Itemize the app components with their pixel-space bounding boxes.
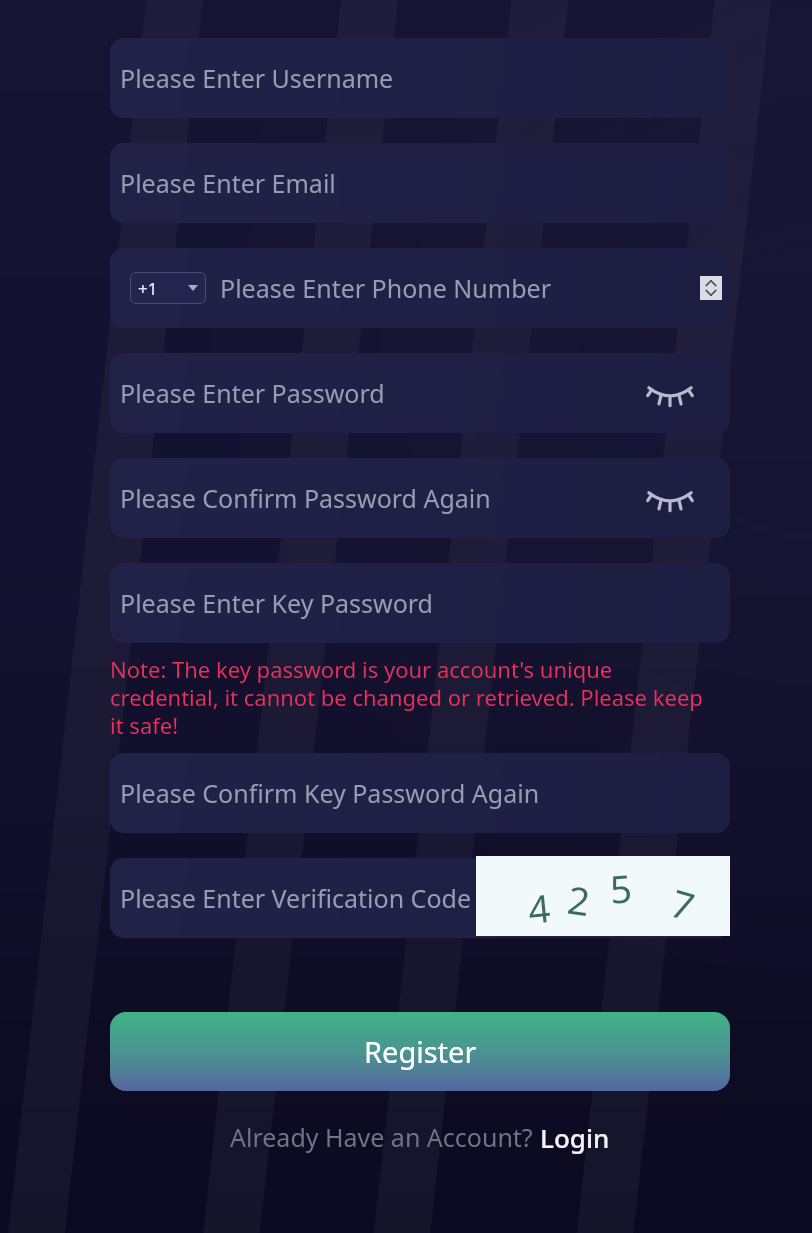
staticText: 2 bbox=[564, 873, 593, 927]
staticText: Please Enter Phone Number bbox=[220, 271, 700, 305]
staticText: Note: The key password is your account's… bbox=[110, 654, 710, 740]
button[interactable]: Please Enter Verification Code bbox=[110, 858, 730, 938]
staticText: 7 bbox=[665, 876, 701, 932]
button[interactable]: Refresh verification code bbox=[476, 856, 730, 936]
staticText: Please Enter Verification Code bbox=[120, 881, 480, 915]
button[interactable]: Please Enter Key Password bbox=[110, 563, 730, 643]
staticText: +1 bbox=[138, 277, 158, 300]
staticText: Please Confirm Password Again bbox=[120, 481, 491, 515]
button[interactable]: Please Confirm Key Password Again bbox=[110, 753, 730, 833]
staticText: 5 bbox=[608, 861, 634, 915]
button[interactable]: +1 bbox=[110, 248, 730, 328]
button[interactable]: +1 bbox=[130, 272, 206, 304]
staticText: Please Confirm Key Password Again bbox=[120, 776, 540, 810]
staticText: Login bbox=[540, 1120, 610, 1155]
button[interactable]: Show confirm password bbox=[647, 485, 693, 511]
staticText: Please Enter Key Password bbox=[120, 586, 433, 620]
button[interactable]: Increment or decrement number bbox=[700, 276, 722, 300]
staticText: 4 bbox=[525, 881, 553, 935]
button[interactable]: Please Enter Password bbox=[110, 353, 730, 433]
staticText: Please Enter Username bbox=[120, 61, 394, 95]
button[interactable]: Please Confirm Password Again bbox=[110, 458, 730, 538]
button[interactable]: Show password bbox=[647, 380, 693, 406]
staticText: Register bbox=[364, 1032, 477, 1071]
staticText: Please Enter Email bbox=[120, 166, 336, 200]
button[interactable]: Please Enter Email bbox=[110, 143, 730, 223]
staticText: Please Enter Password bbox=[120, 376, 385, 410]
button[interactable]: Register bbox=[110, 1012, 730, 1091]
staticText: Already Have an Account? bbox=[230, 1120, 540, 1154]
button[interactable]: Login bbox=[540, 1120, 610, 1155]
button[interactable]: Please Enter Username bbox=[110, 38, 730, 118]
